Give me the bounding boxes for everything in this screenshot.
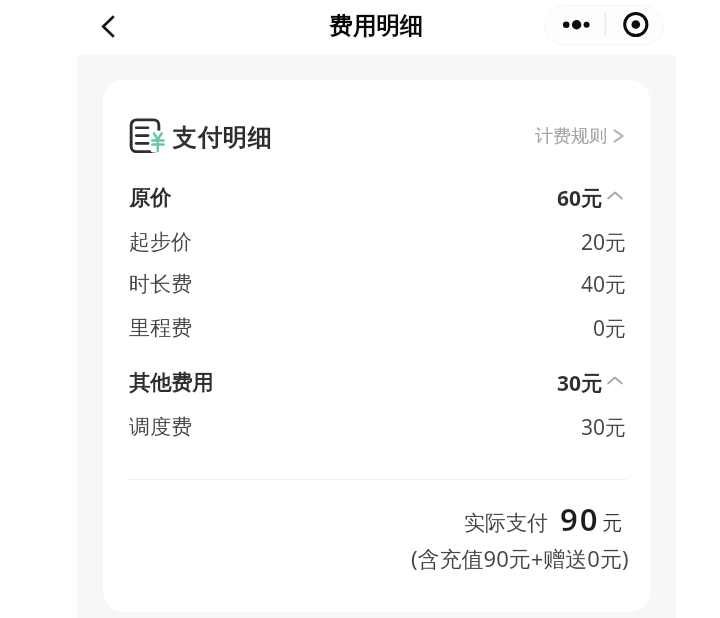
- staticText: 调度费: [129, 414, 192, 440]
- button[interactable]: More options: [544, 5, 664, 46]
- button[interactable]: Back: [88, 4, 128, 48]
- staticText: 时长费: [129, 271, 192, 297]
- staticText: 费用明细: [329, 11, 423, 41]
- staticText: 40元: [581, 270, 627, 299]
- button[interactable]: 里程费: [129, 311, 627, 345]
- staticText: 30元: [557, 369, 603, 398]
- staticText: 计费规则: [535, 125, 607, 148]
- staticText: 元: [602, 511, 622, 536]
- staticText: 实际支付: [464, 510, 548, 536]
- button[interactable]: 起步价: [129, 225, 627, 259]
- staticText: 20元: [581, 228, 627, 257]
- staticText: (含充值90元+赠送0元): [411, 543, 629, 573]
- button[interactable]: 时长费: [129, 267, 627, 301]
- staticText: 里程费: [129, 315, 192, 341]
- staticText: 60元: [557, 184, 603, 213]
- button[interactable]: 其他费用: [129, 366, 627, 400]
- staticText: 原价: [129, 185, 171, 211]
- staticText: 起步价: [129, 229, 192, 255]
- staticText: 0元: [593, 314, 627, 343]
- staticText: 90: [560, 498, 600, 540]
- button[interactable]: 原价: [129, 181, 627, 215]
- staticText: 支付明细: [172, 123, 272, 153]
- staticText: 其他费用: [129, 370, 213, 396]
- staticText: 30元: [581, 413, 627, 442]
- button[interactable]: 计费规则: [535, 122, 624, 150]
- button[interactable]: 调度费: [129, 410, 627, 444]
